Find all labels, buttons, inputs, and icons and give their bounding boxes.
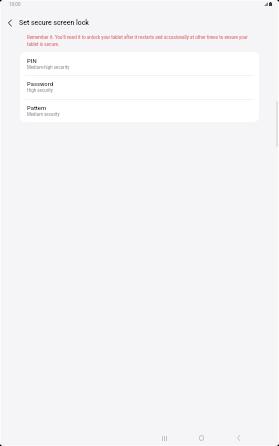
staticText: Password [27,81,54,88]
staticText: Medium-high security [27,64,70,70]
staticText: Set secure screen lock [19,19,89,27]
staticText: High security [27,87,53,93]
button[interactable]: Navigate up [3,16,16,29]
button[interactable]: Back [220,426,257,446]
button[interactable]: PIN [20,52,259,75]
staticText: Pattern [27,105,47,112]
button[interactable]: Home [183,426,220,446]
staticText: Remember it. You'll need it to unlock yo… [27,34,253,47]
staticText: Medium security [27,111,60,117]
staticText: PIN [27,58,37,65]
button[interactable]: Recents [146,426,183,446]
button[interactable]: Pattern [20,99,259,122]
button[interactable]: Password [20,75,259,99]
staticText: 10:00 [9,1,21,7]
